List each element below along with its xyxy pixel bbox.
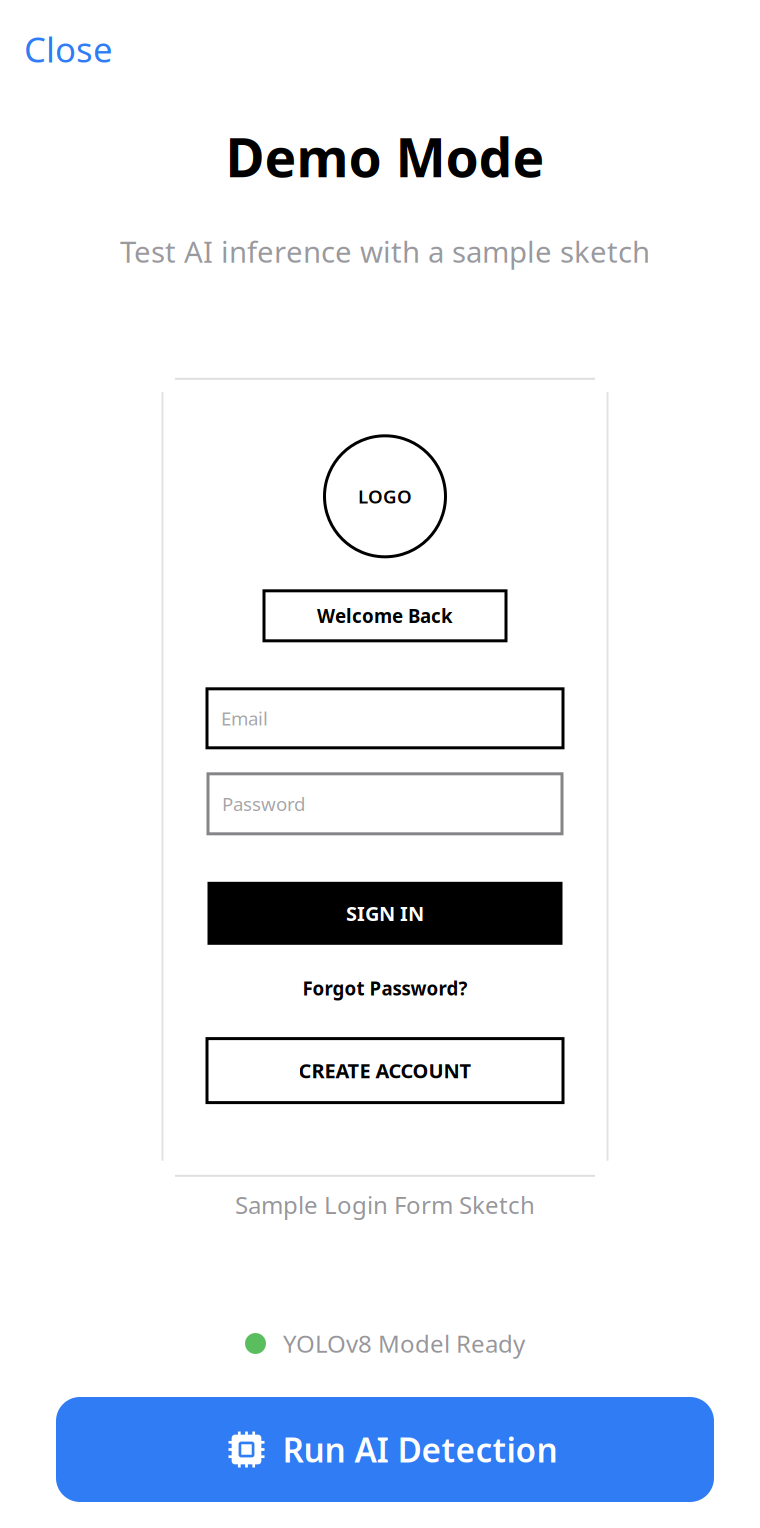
staticText: YOLOv8 Model Ready [283, 1328, 525, 1359]
staticText: Email [221, 706, 268, 731]
staticText: Close [24, 26, 113, 72]
staticText: CREATE ACCOUNT [298, 1057, 471, 1084]
staticText: Run AI Detection [282, 1427, 557, 1472]
staticText: Test AI inference with a sample sketch [120, 232, 650, 271]
staticText: LOGO [358, 484, 412, 509]
button[interactable]: Run AI Detection [56, 1397, 714, 1502]
staticText: Welcome Back [317, 603, 453, 628]
staticText: Password [222, 791, 305, 816]
staticText: Sample Login Form Sketch [235, 1189, 535, 1221]
button[interactable]: Close [24, 26, 113, 72]
staticText: Forgot Password? [302, 976, 467, 1001]
staticText: Demo Mode [225, 121, 544, 192]
staticText: SIGN IN [346, 900, 424, 927]
